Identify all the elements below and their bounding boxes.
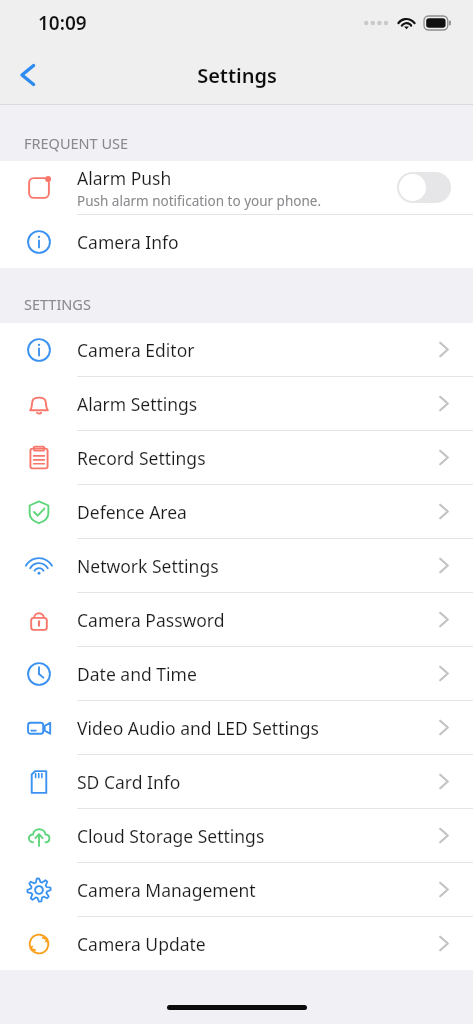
- staticText: Push alarm notification to your phone.: [77, 192, 322, 210]
- staticText: Record Settings: [77, 446, 206, 470]
- staticText: Network Settings: [77, 554, 219, 578]
- button[interactable]: Camera Management: [0, 863, 473, 916]
- staticText: SD Card Info: [77, 770, 181, 794]
- staticText: Alarm Settings: [77, 392, 198, 416]
- button[interactable]: Date and Time: [0, 647, 473, 700]
- staticText: FREQUENT USE: [24, 133, 129, 153]
- button[interactable]: Cloud Storage Settings: [0, 809, 473, 862]
- button[interactable]: Alarm Push toggle: [397, 172, 451, 203]
- staticText: Camera Update: [77, 932, 206, 956]
- button[interactable]: Camera Info: [0, 215, 473, 268]
- staticText: Video Audio and LED Settings: [77, 716, 319, 740]
- button[interactable]: Record Settings: [0, 431, 473, 484]
- staticText: Date and Time: [77, 662, 197, 686]
- button[interactable]: Camera Editor: [0, 323, 473, 376]
- button[interactable]: Defence Area: [0, 485, 473, 538]
- staticText: Settings: [197, 62, 277, 89]
- button[interactable]: Alarm Push: [0, 161, 473, 214]
- staticText: Camera Info: [77, 230, 179, 254]
- button[interactable]: Camera Update: [0, 917, 473, 970]
- staticText: 10:09: [38, 10, 87, 36]
- staticText: Camera Password: [77, 608, 225, 632]
- staticText: Alarm Push: [77, 166, 172, 190]
- button[interactable]: Network Settings: [0, 539, 473, 592]
- staticText: Cloud Storage Settings: [77, 824, 265, 848]
- button[interactable]: Alarm Settings: [0, 377, 473, 430]
- button[interactable]: Camera Password: [0, 593, 473, 646]
- button[interactable]: Video Audio and LED Settings: [0, 701, 473, 754]
- button[interactable]: Back: [0, 46, 56, 104]
- staticText: Camera Editor: [77, 338, 195, 362]
- staticText: SETTINGS: [24, 294, 91, 314]
- staticText: Camera Management: [77, 878, 256, 902]
- staticText: Defence Area: [77, 500, 187, 524]
- button[interactable]: SD Card Info: [0, 755, 473, 808]
